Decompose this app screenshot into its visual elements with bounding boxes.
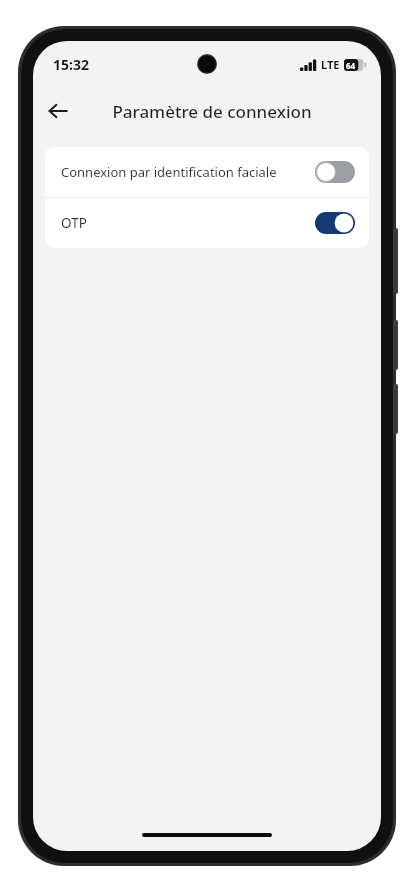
button[interactable]: Enabled bbox=[315, 212, 355, 234]
button[interactable]: Back bbox=[38, 91, 78, 131]
button[interactable]: OTP bbox=[45, 198, 369, 248]
staticText: Paramètre de connexion bbox=[112, 100, 312, 123]
staticText: LTE bbox=[321, 57, 340, 72]
staticText: 15:32 bbox=[53, 55, 89, 74]
staticText: Connexion par identification faciale bbox=[61, 163, 277, 181]
staticText: OTP bbox=[61, 214, 87, 232]
button[interactable]: Disabled bbox=[315, 161, 355, 183]
staticText: 64 bbox=[346, 60, 356, 71]
button[interactable]: Connexion par identification faciale bbox=[45, 147, 369, 197]
